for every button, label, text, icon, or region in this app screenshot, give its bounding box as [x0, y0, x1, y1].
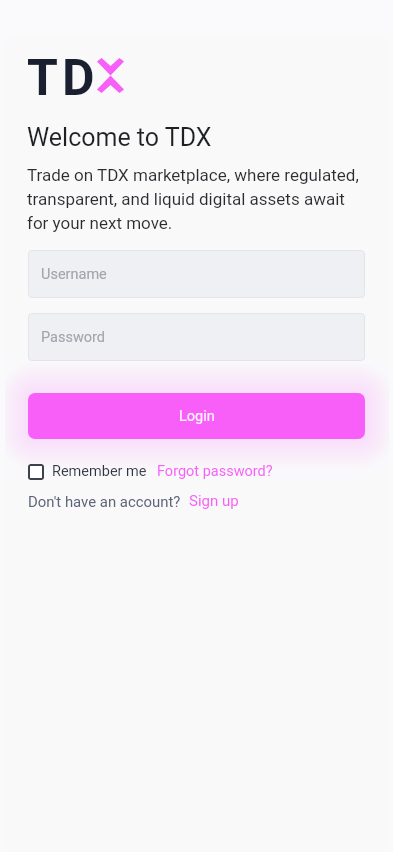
staticText: Welcome to TDX: [27, 123, 212, 152]
staticText: Password: [41, 329, 106, 346]
button[interactable]: Login: [28, 393, 365, 439]
button[interactable]: Username: [28, 250, 365, 298]
staticText: Remember me: [52, 463, 147, 480]
button[interactable]: Sign up: [189, 492, 239, 510]
button[interactable]: Password: [28, 313, 365, 361]
button[interactable]: Forgot password?: [157, 463, 273, 480]
staticText: Sign up: [189, 492, 239, 510]
staticText: D: [62, 49, 95, 108]
staticText: T: [27, 49, 58, 108]
staticText: Username: [41, 266, 107, 283]
staticText: Trade on TDX marketplace, where regulate…: [27, 165, 368, 233]
staticText: Don't have an account?: [28, 493, 181, 510]
staticText: Forgot password?: [157, 463, 273, 480]
button[interactable]: Remember me: [28, 463, 147, 480]
staticText: Login: [179, 408, 215, 425]
